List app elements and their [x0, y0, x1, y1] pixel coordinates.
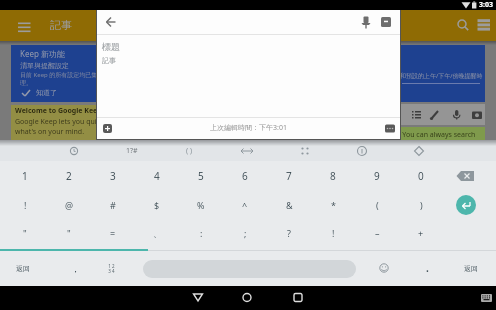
- button[interactable]: [455, 17, 471, 33]
- button[interactable]: ": [47, 219, 91, 247]
- staticText: 1?#: [126, 146, 138, 156]
- button[interactable]: [354, 143, 370, 159]
- button[interactable]: [66, 143, 82, 159]
- button[interactable]: 4: [135, 162, 179, 190]
- button[interactable]: 1: [3, 162, 47, 190]
- button[interactable]: =: [91, 219, 135, 247]
- button[interactable]: [383, 123, 397, 134]
- staticText: :: [200, 227, 203, 239]
- button[interactable]: *: [311, 191, 355, 219]
- staticText: 6: [242, 169, 248, 183]
- staticText: –: [375, 227, 380, 239]
- staticText: ^: [242, 199, 248, 211]
- button[interactable]: @: [47, 191, 91, 219]
- button[interactable]: 7: [267, 162, 311, 190]
- staticText: 9: [374, 169, 380, 183]
- button[interactable]: !: [311, 219, 355, 247]
- button[interactable]: &: [267, 191, 311, 219]
- button[interactable]: [11, 45, 101, 102]
- staticText: 知道了: [36, 88, 57, 97]
- staticText: 5: [198, 169, 204, 183]
- button[interactable]: 5: [179, 162, 223, 190]
- button[interactable]: 8: [311, 162, 355, 190]
- staticText: 目前 Keep 的所有設定均已集中管: [20, 71, 97, 79]
- button[interactable]: ": [3, 219, 47, 247]
- button[interactable]: [450, 165, 482, 187]
- staticText: 和預設的上午/下午/傍晚提醒時: [400, 72, 483, 80]
- button[interactable]: .: [415, 258, 439, 278]
- staticText: ): [420, 199, 423, 211]
- button[interactable]: ;: [223, 219, 267, 247]
- button[interactable]: [378, 14, 394, 30]
- button[interactable]: ( ): [175, 143, 203, 158]
- staticText: %: [197, 199, 205, 211]
- button[interactable]: [11, 105, 101, 140]
- staticText: 3: [110, 169, 116, 183]
- staticText: ，: [71, 263, 80, 274]
- button[interactable]: [376, 260, 392, 276]
- button[interactable]: 1?#: [118, 143, 146, 158]
- button[interactable]: [103, 14, 119, 30]
- button[interactable]: ^: [223, 191, 267, 219]
- staticText: 清單與提醒設定: [20, 61, 69, 70]
- button[interactable]: [297, 143, 313, 159]
- button[interactable]: 返回: [452, 258, 490, 278]
- button[interactable]: 0: [399, 162, 443, 190]
- button[interactable]: +: [399, 219, 443, 247]
- button[interactable]: 返回: [4, 258, 42, 278]
- button[interactable]: [290, 289, 306, 305]
- staticText: 7: [286, 169, 292, 183]
- staticText: 1 2 3 4: [108, 263, 115, 274]
- staticText: Keep 新功能: [20, 48, 65, 59]
- button[interactable]: $: [135, 191, 179, 219]
- button[interactable]: [17, 20, 33, 32]
- button[interactable]: [143, 260, 356, 278]
- button[interactable]: [396, 45, 485, 102]
- staticText: .: [426, 261, 429, 275]
- button[interactable]: :: [179, 219, 223, 247]
- button[interactable]: [456, 195, 476, 215]
- button[interactable]: [396, 104, 485, 125]
- button[interactable]: [479, 292, 493, 304]
- button[interactable]: %: [179, 191, 223, 219]
- staticText: what's on your mind.: [15, 127, 85, 137]
- button[interactable]: (: [355, 191, 399, 219]
- button[interactable]: –: [355, 219, 399, 247]
- button[interactable]: [101, 122, 114, 135]
- staticText: 2: [66, 169, 72, 183]
- button[interactable]: ): [399, 191, 443, 219]
- button[interactable]: !: [3, 191, 47, 219]
- staticText: &: [286, 199, 293, 211]
- staticText: 3:03: [479, 0, 493, 10]
- button[interactable]: ，: [58, 258, 92, 278]
- staticText: t You can always search: [398, 130, 476, 140]
- button[interactable]: 1 2 3 4: [96, 258, 126, 278]
- button[interactable]: [239, 143, 255, 159]
- staticText: =: [110, 227, 116, 239]
- button[interactable]: #: [91, 191, 135, 219]
- staticText: 4: [154, 169, 160, 183]
- button[interactable]: [477, 17, 491, 33]
- button[interactable]: [190, 289, 206, 305]
- staticText: #: [110, 199, 116, 211]
- staticText: 0: [418, 169, 424, 183]
- button[interactable]: 9: [355, 162, 399, 190]
- staticText: 標題: [102, 41, 120, 52]
- button[interactable]: 6: [223, 162, 267, 190]
- staticText: 記事: [102, 56, 116, 65]
- staticText: +: [418, 227, 424, 239]
- staticText: !: [332, 227, 335, 239]
- staticText: 8: [330, 169, 336, 183]
- button[interactable]: 3: [91, 162, 135, 190]
- staticText: *: [331, 199, 336, 211]
- button[interactable]: ?: [267, 219, 311, 247]
- staticText: Google Keep lets you quickl: [15, 117, 101, 127]
- button[interactable]: [411, 143, 427, 159]
- button[interactable]: 2: [47, 162, 91, 190]
- button[interactable]: [358, 14, 374, 30]
- button[interactable]: [396, 127, 485, 140]
- staticText: Welcome to Google Keep: [15, 106, 101, 116]
- button[interactable]: [239, 289, 255, 305]
- staticText: @: [65, 199, 74, 211]
